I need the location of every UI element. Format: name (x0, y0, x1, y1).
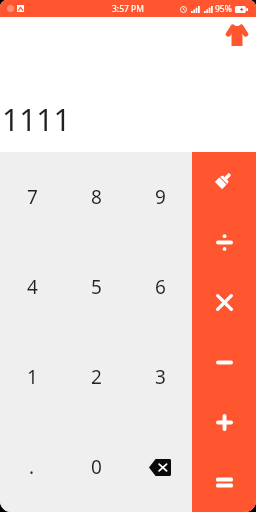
staticText: 3:57 PM (112, 3, 144, 15)
button[interactable]: 7 (0, 152, 64, 242)
button[interactable]: 1 (0, 332, 64, 422)
staticText: 1111 (2, 99, 71, 140)
button[interactable]: 8 (64, 152, 128, 242)
button[interactable]: 5 (64, 242, 128, 332)
button[interactable]: 6 (128, 242, 192, 332)
staticText: 3 (155, 364, 166, 390)
button[interactable]: . (0, 422, 64, 512)
button[interactable]: Plus (192, 392, 256, 452)
button[interactable]: 2 (64, 332, 128, 422)
button[interactable]: Divide (192, 212, 256, 272)
staticText: 95% (215, 3, 232, 15)
staticText: 6 (155, 274, 166, 300)
staticText: 8 (91, 184, 102, 210)
staticText: 7 (27, 184, 38, 210)
staticText: . (29, 454, 35, 480)
button[interactable]: 4 (0, 242, 64, 332)
button[interactable]: Clear (192, 152, 256, 212)
button[interactable]: 0 (64, 422, 128, 512)
staticText: 0 (91, 454, 102, 480)
button[interactable]: Backspace (128, 422, 192, 512)
button[interactable]: Share (215, 13, 256, 57)
button[interactable]: Multiply (192, 272, 256, 332)
staticText: 4 (27, 274, 38, 300)
button[interactable]: 3 (128, 332, 192, 422)
button[interactable]: 9 (128, 152, 192, 242)
staticText: 2 (91, 364, 102, 390)
staticText: 5 (91, 274, 102, 300)
staticText: 9 (155, 184, 166, 210)
button[interactable]: Minus (192, 332, 256, 392)
button[interactable]: Equals (192, 452, 256, 512)
staticText: 1 (27, 364, 38, 390)
